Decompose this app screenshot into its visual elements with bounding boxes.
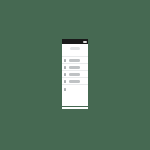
button[interactable]: List item <box>62 78 88 85</box>
button[interactable]: List item <box>62 71 88 78</box>
button[interactable]: Search <box>62 44 88 53</box>
button[interactable]: List item <box>62 57 88 64</box>
button[interactable]: List item <box>62 64 88 71</box>
button[interactable]: List item <box>62 85 88 94</box>
